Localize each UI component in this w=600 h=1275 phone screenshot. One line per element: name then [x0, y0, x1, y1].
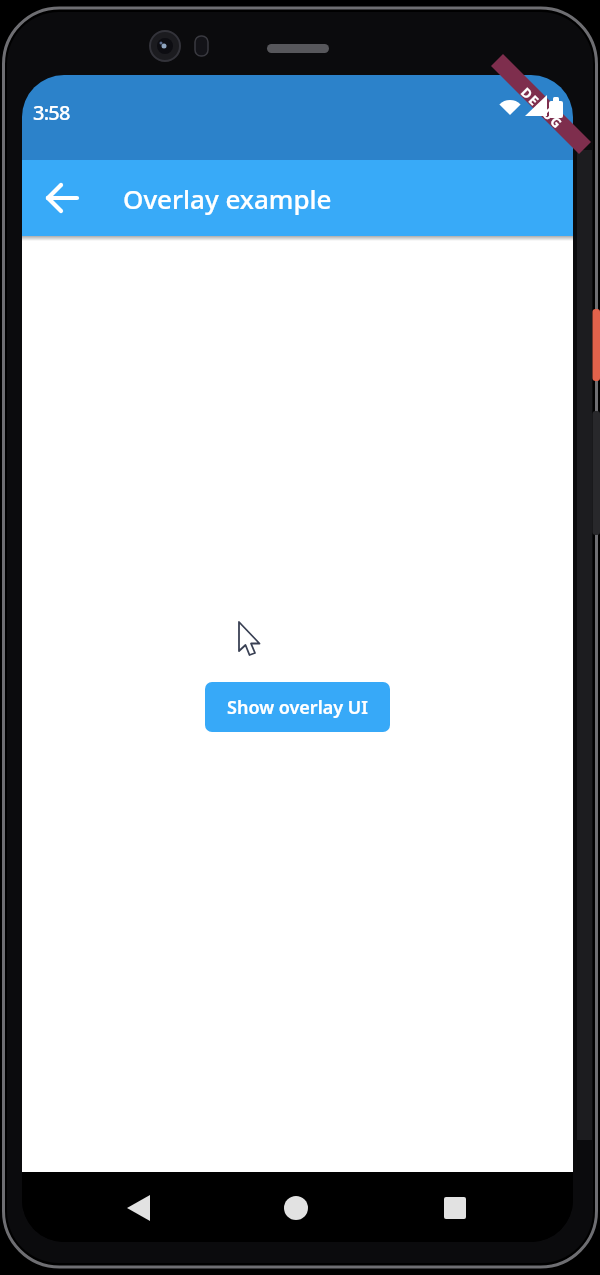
- staticText: Overlay example: [123, 181, 332, 216]
- staticText: Show overlay UI: [227, 695, 368, 720]
- button[interactable]: [46, 181, 80, 215]
- staticText: 3:58: [33, 99, 70, 126]
- button[interactable]: [114, 1183, 164, 1233]
- button[interactable]: Show overlay UI: [205, 682, 390, 732]
- button[interactable]: [271, 1183, 321, 1233]
- staticText: DEBUG: [517, 83, 567, 133]
- button[interactable]: [430, 1183, 480, 1233]
